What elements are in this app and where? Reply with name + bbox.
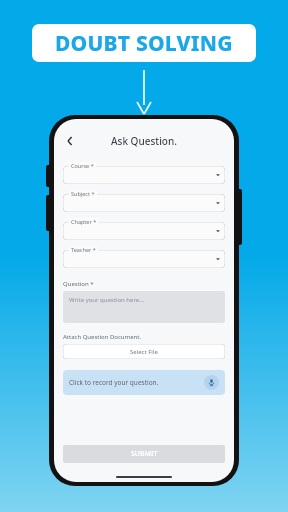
button[interactable] [63, 194, 225, 212]
staticText: Subject * [71, 190, 95, 197]
staticText: Course * [71, 162, 94, 169]
staticText: Teacher * [71, 246, 96, 253]
staticText: Click to record your question. [69, 378, 159, 387]
staticText: Chapter * [71, 218, 97, 225]
button[interactable] [63, 166, 225, 184]
button[interactable]: Record [204, 375, 219, 390]
button[interactable] [63, 250, 225, 268]
button[interactable]: Write your question here... [63, 291, 225, 323]
staticText: Attach Question Document. [63, 333, 142, 341]
staticText: Ask Question. [111, 134, 177, 148]
button[interactable]: Click to record your question. [63, 370, 225, 395]
button[interactable]: Back [60, 131, 80, 151]
staticText: Question * [63, 280, 94, 288]
staticText: Write your question here... [69, 296, 145, 304]
button[interactable]: DOUBT SOLVING [32, 24, 256, 62]
staticText: Select File [130, 348, 158, 356]
staticText: DOUBT SOLVING [55, 29, 233, 58]
button[interactable]: SUBMIT [63, 445, 225, 463]
staticText: SUBMIT [131, 449, 158, 459]
button[interactable] [63, 222, 225, 240]
button[interactable]: Select File [63, 344, 225, 359]
